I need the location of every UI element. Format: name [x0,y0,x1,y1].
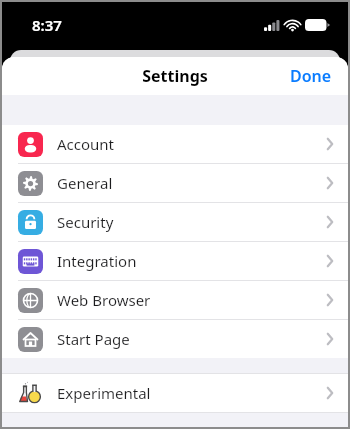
button[interactable]: Web Browser [2,281,348,319]
button[interactable]: Account [2,125,348,163]
staticText: Integration [57,251,326,271]
staticText: Experimental [57,383,326,403]
button[interactable]: Security [2,203,348,241]
staticText: Start Page [57,329,326,349]
staticText: Settings [142,65,208,87]
button[interactable]: General [2,164,348,202]
button[interactable]: Start Page [2,320,348,358]
button[interactable]: Experimental [2,374,348,412]
button[interactable]: Integration [2,242,348,280]
staticText: General [57,173,326,193]
staticText: Account [57,134,326,154]
staticText: Security [57,212,326,232]
staticText: Done [290,65,332,87]
staticText: Web Browser [57,290,326,310]
staticText: 8:37 [32,15,62,35]
button[interactable]: Done [274,57,348,95]
